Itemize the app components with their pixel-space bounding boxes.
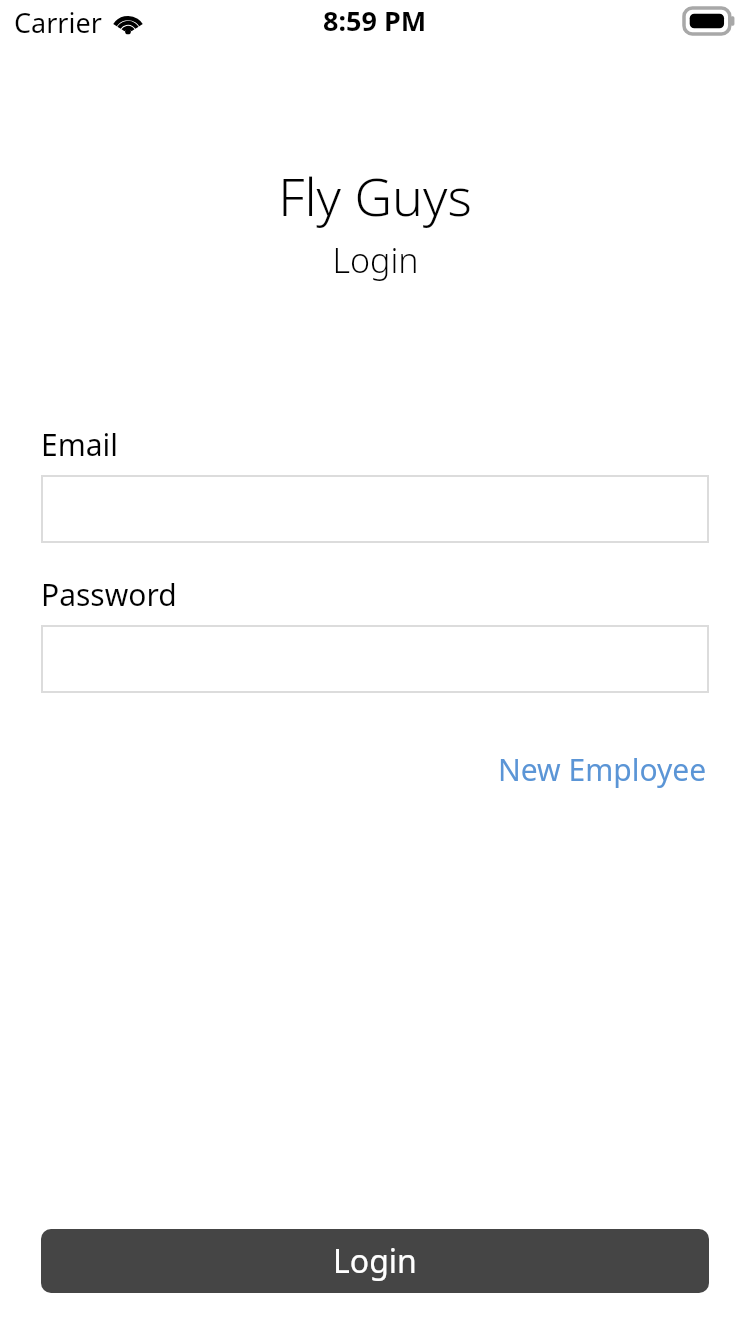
- button[interactable]: [41, 625, 709, 693]
- staticText: Email: [41, 424, 119, 465]
- staticText: Fly Guys: [278, 160, 472, 231]
- button[interactable]: Login: [41, 1229, 709, 1293]
- button[interactable]: [41, 475, 709, 543]
- staticText: Login: [332, 237, 419, 283]
- staticText: Login: [333, 1239, 417, 1283]
- staticText: Password: [41, 574, 177, 615]
- staticText: Carrier: [14, 4, 102, 41]
- button[interactable]: New Employee: [496, 745, 709, 794]
- staticText: 8:59 PM: [323, 2, 427, 39]
- staticText: New Employee: [498, 749, 707, 790]
